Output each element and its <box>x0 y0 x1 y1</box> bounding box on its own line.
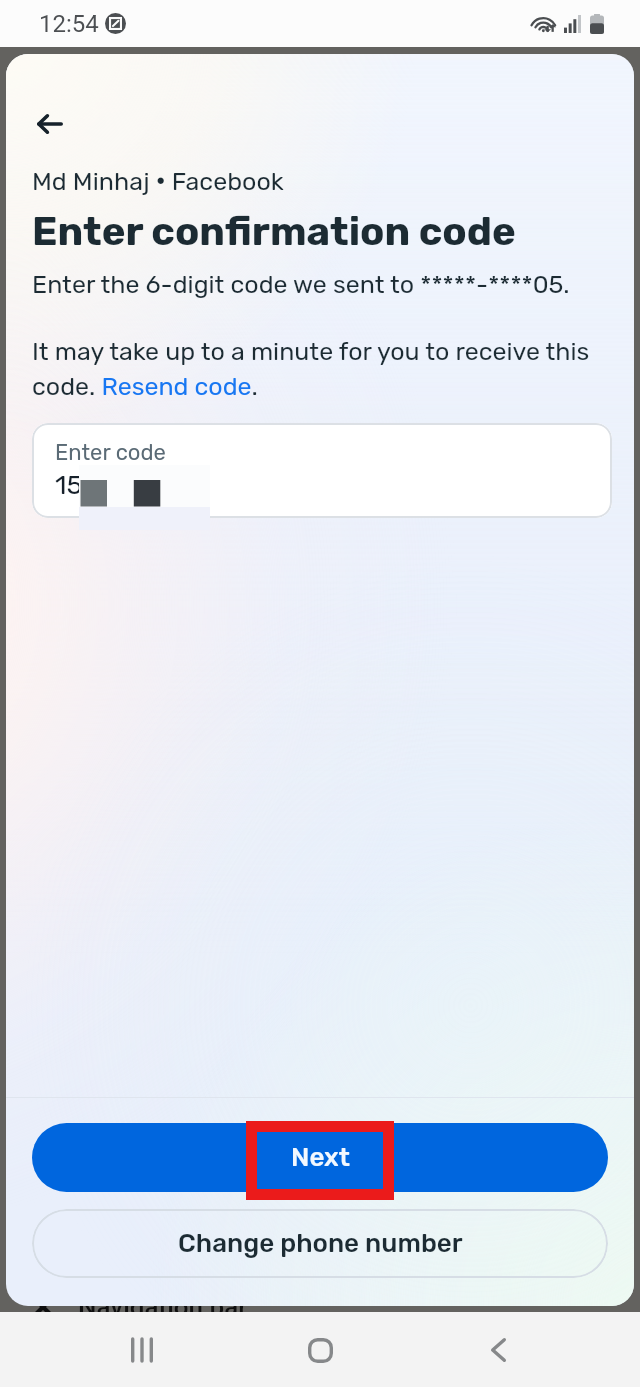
staticText: Enter the 6-digit code we sent to *****-… <box>32 270 570 300</box>
staticText: Next <box>291 1142 350 1173</box>
button[interactable]: Next <box>32 1123 608 1192</box>
button[interactable]: Enter code <box>32 423 612 518</box>
staticText: Enter code <box>55 439 166 465</box>
button[interactable]: Back <box>21 102 79 146</box>
staticText: Change phone number <box>178 1228 463 1259</box>
staticText: 15 <box>55 469 83 501</box>
staticText: Navigation bar <box>78 1292 248 1322</box>
button[interactable]: Home <box>284 1314 356 1386</box>
staticText: Enter confirmation code <box>32 208 516 255</box>
button[interactable]: Change phone number <box>32 1209 608 1278</box>
button[interactable]: Recent apps <box>106 1314 178 1386</box>
button[interactable]: Back <box>462 1314 534 1386</box>
staticText: Md Minhaj · Facebook <box>32 162 284 198</box>
staticText: 12:54 <box>39 10 99 38</box>
staticText: It may take up to a minute for you to re… <box>32 337 612 401</box>
